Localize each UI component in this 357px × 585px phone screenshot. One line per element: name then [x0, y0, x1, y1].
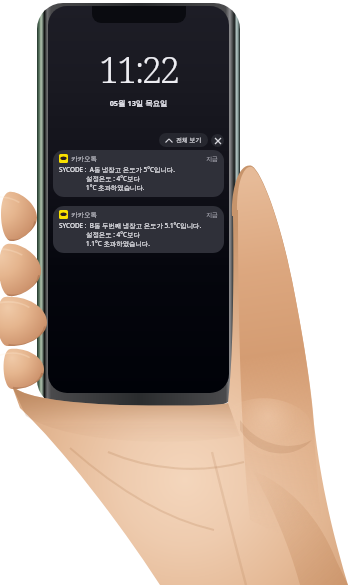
- staticText: SYCODE : B동 두번째 냉장고 온도가 5.1°C입니다.: [59, 221, 202, 230]
- staticText: 1°C 초과하였습니다.: [86, 183, 145, 192]
- staticText: 설정온도 : 4°C보다: [86, 174, 140, 183]
- staticText: 지금: [206, 155, 218, 163]
- staticText: 1.1°C 초과하였습니다.: [86, 239, 150, 248]
- staticText: SYCODE : A동 냉장고 온도가 5°C입니다.: [59, 165, 175, 174]
- staticText: 카카오톡: [71, 211, 97, 219]
- staticText: 05월 13일 목요일: [48, 98, 229, 108]
- button[interactable]: Dismiss all notifications: [211, 134, 224, 147]
- staticText: 카카오톡: [71, 155, 97, 163]
- button[interactable]: 전체 보기: [159, 133, 208, 147]
- button[interactable]: 카카오톡: [53, 206, 224, 253]
- staticText: 지금: [206, 211, 218, 219]
- staticText: 11:22: [48, 45, 229, 94]
- staticText: 전체 보기: [176, 136, 202, 144]
- button[interactable]: 카카오톡: [53, 150, 224, 197]
- staticText: 설정온도 : 4°C보다: [86, 230, 140, 239]
